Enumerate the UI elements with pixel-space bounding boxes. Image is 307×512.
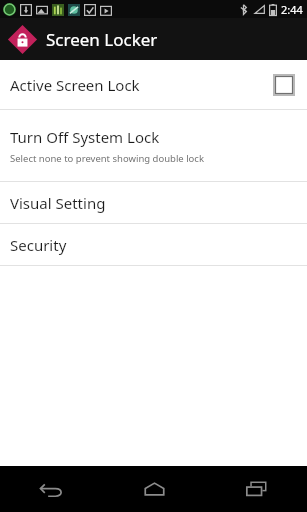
button[interactable]: Recent apps: [205, 466, 307, 512]
button[interactable]: Security: [0, 224, 307, 265]
button[interactable]: Active Screen Lock: [0, 60, 307, 109]
button[interactable]: Visual Setting: [0, 182, 307, 223]
staticText: Select none to prevent showing double lo…: [10, 152, 204, 165]
staticText: Screen Locker: [46, 28, 158, 51]
button[interactable]: Turn Off System Lock: [0, 110, 307, 181]
staticText: Visual Setting: [10, 193, 106, 213]
button[interactable]: Back: [0, 466, 103, 512]
button[interactable]: Home: [103, 466, 205, 512]
other: Screen Locker icon: [7, 24, 38, 55]
staticText: Security: [10, 235, 67, 255]
staticText: 2:44: [281, 2, 303, 17]
staticText: Turn Off System Lock: [10, 127, 160, 147]
staticText: Active Screen Lock: [10, 75, 273, 95]
button[interactable]: Active Screen Lock checkbox: [273, 74, 295, 96]
